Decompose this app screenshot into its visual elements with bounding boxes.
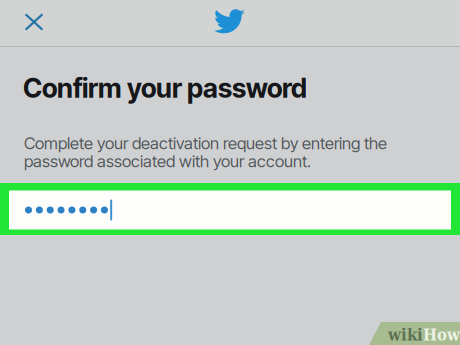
button[interactable]: Password <box>9 190 451 229</box>
button[interactable]: Close <box>11 0 57 45</box>
staticText: wiki <box>388 325 423 344</box>
staticText: How <box>423 325 460 344</box>
staticText: Confirm your password <box>23 72 307 104</box>
staticText: password associated with your account. <box>24 151 311 171</box>
staticText: Complete your deactivation request by en… <box>24 133 387 153</box>
